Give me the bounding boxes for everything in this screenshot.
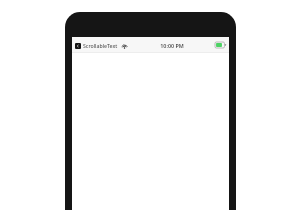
staticText: ScrollableText bbox=[83, 42, 118, 49]
button[interactable]: Battery status bbox=[215, 42, 226, 48]
button[interactable]: Back to ScrollableText bbox=[74, 42, 129, 49]
staticText: 10:00 PM bbox=[160, 42, 184, 49]
